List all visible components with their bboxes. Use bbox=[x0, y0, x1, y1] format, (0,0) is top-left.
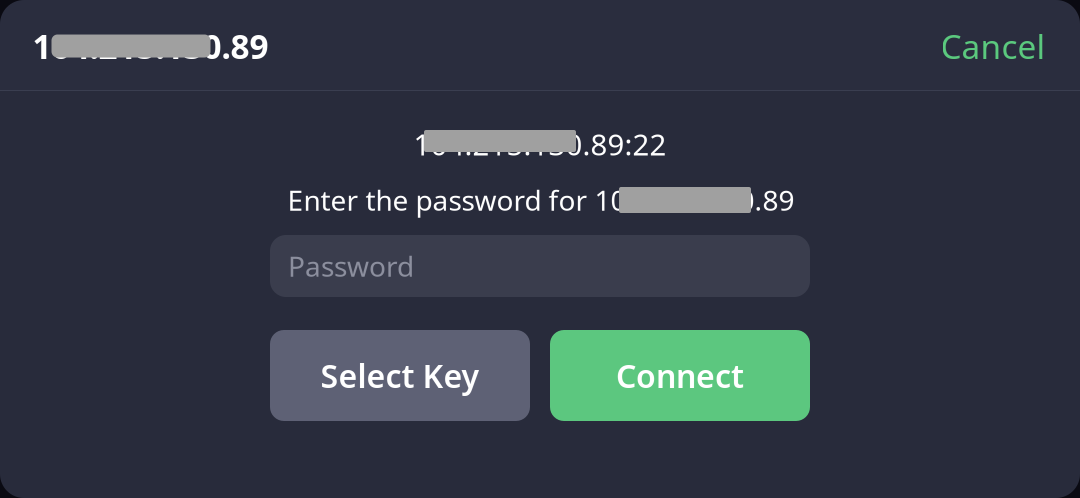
button[interactable]: Cancel bbox=[895, 15, 1045, 77]
staticText: Connect bbox=[616, 354, 744, 397]
staticText: 104.215.130.89 bbox=[32, 24, 268, 68]
button[interactable]: Connect bbox=[550, 330, 810, 421]
staticText: Cancel bbox=[940, 24, 1045, 68]
staticText: 104.215.130.89:22 bbox=[413, 124, 666, 163]
staticText: Password bbox=[288, 247, 414, 285]
button[interactable]: Select Key bbox=[270, 330, 530, 421]
button[interactable]: Password bbox=[270, 235, 810, 297]
staticText: Select Key bbox=[320, 354, 479, 397]
staticText: Enter the password for 104.215.130.89 bbox=[287, 181, 794, 219]
